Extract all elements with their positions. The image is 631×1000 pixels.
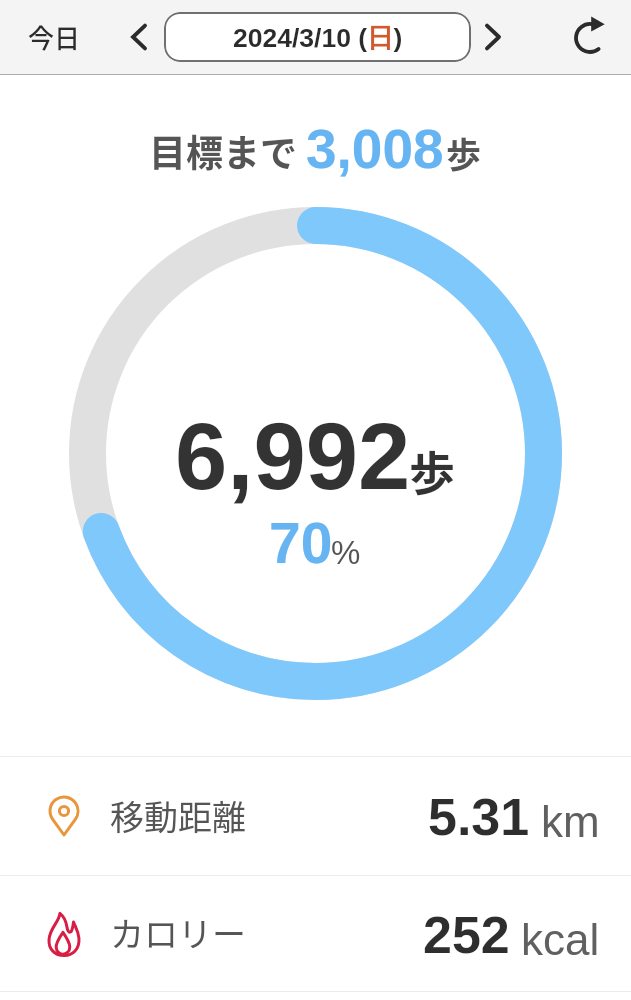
staticText: 歩 [446,127,482,178]
button[interactable]: Next day [471,15,515,59]
staticText: kcal [521,915,600,964]
staticText: km [541,797,600,846]
button[interactable]: 2024/3/10 (日) [164,12,471,62]
staticText: 今日 [28,18,81,56]
staticText: 5.31 [428,788,530,846]
staticText: 6,992 [175,404,411,509]
staticText: 2024/3/10 (日) [233,21,403,54]
staticText: 70 [269,511,333,575]
staticText: カロリー [110,908,246,957]
staticText: 252 [423,906,510,964]
staticText: 移動距離 [110,791,246,840]
staticText: % [331,534,361,571]
button[interactable]: Refresh [569,15,613,59]
button[interactable]: カロリー [0,876,631,991]
button[interactable]: 今日 [16,10,93,64]
staticText: 3,008 [306,118,444,179]
staticText: 目標まで [149,124,297,178]
staticText: 歩 [409,437,455,504]
button[interactable]: 移動距離 [0,757,631,875]
button[interactable]: Previous day [117,15,161,59]
